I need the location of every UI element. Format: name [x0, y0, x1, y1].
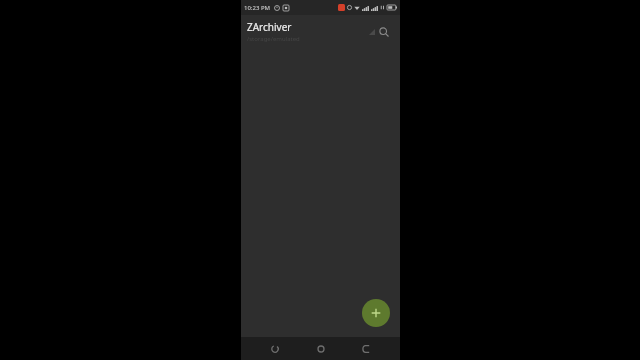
- button[interactable]: Recents: [264, 338, 286, 360]
- button[interactable]: Back: [355, 338, 377, 360]
- staticText: ZArchiver: [247, 20, 292, 34]
- button[interactable]: Search: [374, 22, 394, 42]
- staticText: 10:23 PM: [244, 4, 271, 12]
- staticText: /storage/emulated: [247, 35, 300, 43]
- button[interactable]: Home: [310, 338, 332, 360]
- button[interactable]: Add: [362, 299, 390, 327]
